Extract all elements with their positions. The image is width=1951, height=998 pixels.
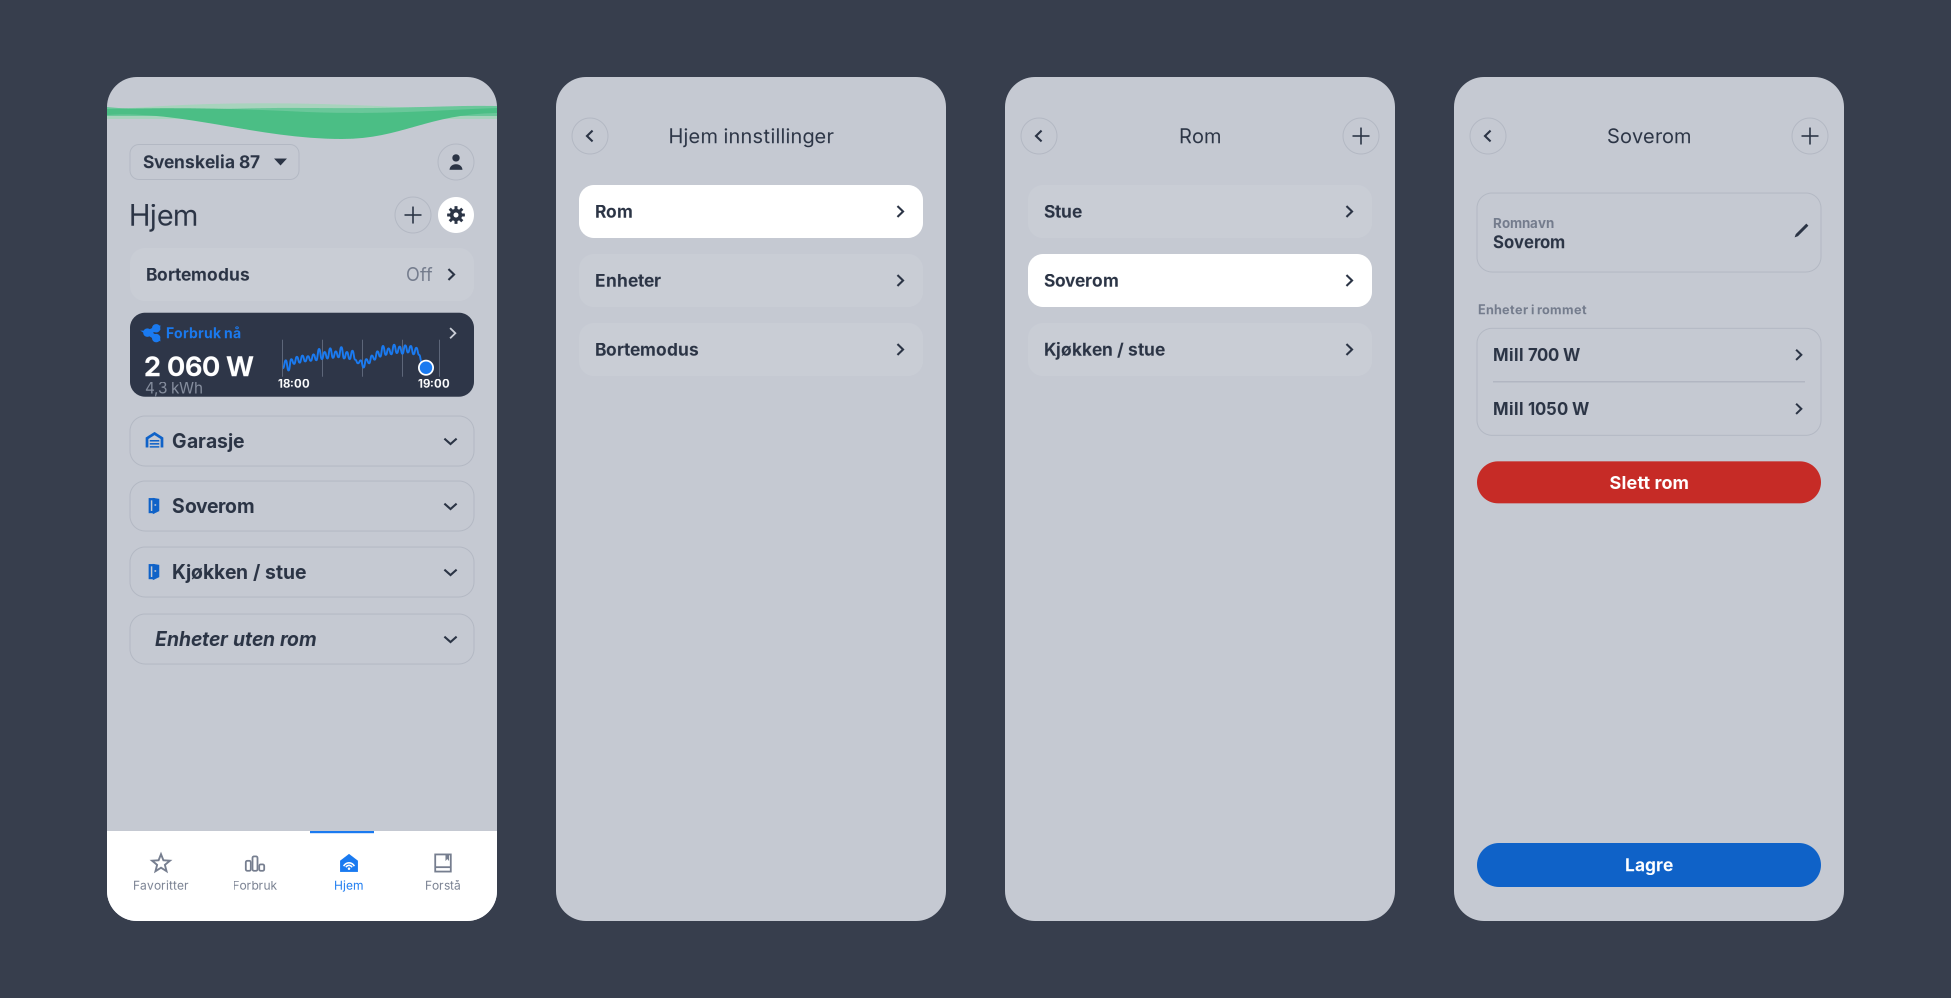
staticText: Mill 1050 W [1493, 399, 1589, 419]
button[interactable]: Bortemodus [579, 323, 923, 376]
staticText: Romnavn [1493, 215, 1554, 231]
button[interactable]: Settings [438, 197, 474, 233]
staticText: Bortemodus [595, 339, 699, 360]
button[interactable]: Forbruk nå [130, 313, 474, 397]
button[interactable]: Bortemodus [130, 248, 474, 301]
staticText: Favoritter [133, 878, 189, 892]
button[interactable]: Forbruk [208, 831, 302, 921]
staticText: Rom [1179, 124, 1221, 148]
button[interactable]: Enheter [579, 254, 923, 307]
button[interactable]: Mill 1050 W [1477, 382, 1821, 435]
button[interactable]: Enheter uten rom [130, 614, 474, 664]
staticText: 2 060 W [144, 350, 254, 383]
staticText: Bortemodus [146, 264, 250, 285]
staticText: Forstå [425, 878, 461, 892]
button[interactable]: Add [395, 197, 431, 233]
staticText: Forbruk nå [166, 325, 241, 342]
button[interactable]: Kjøkken / stue [130, 547, 474, 597]
staticText: 18:00 [278, 377, 310, 390]
button[interactable]: Add [1792, 118, 1828, 154]
staticText: Stue [1044, 201, 1082, 222]
button[interactable]: Slett rom [1477, 461, 1821, 503]
staticText: Enheter i rommet [1478, 302, 1587, 317]
staticText: Hjem [129, 197, 198, 233]
button[interactable]: Back [1021, 118, 1057, 154]
button[interactable]: Back [1470, 118, 1506, 154]
staticText: Rom [595, 201, 633, 222]
button[interactable]: Forstå [396, 831, 490, 921]
button[interactable]: Back [572, 118, 608, 154]
staticText: Soverom [1493, 232, 1565, 252]
staticText: Enheter [595, 270, 661, 291]
button[interactable]: Soverom [1028, 254, 1372, 307]
staticText: Off [406, 264, 433, 285]
staticText: Mill 700 W [1493, 345, 1580, 365]
button[interactable]: Hjem [302, 831, 396, 921]
button[interactable]: Mill 700 W [1477, 328, 1821, 381]
button[interactable]: Kjøkken / stue [1028, 323, 1372, 376]
staticText: Lagre [1625, 854, 1673, 875]
button[interactable]: Romnavn [1477, 193, 1821, 272]
staticText: Hjem [334, 878, 364, 892]
staticText: Soverom [1607, 124, 1691, 148]
staticText: Garasje [172, 429, 244, 453]
staticText: 19:00 [418, 377, 450, 390]
staticText: Forbruk [232, 878, 277, 892]
button[interactable]: Stue [1028, 185, 1372, 238]
staticText: Soverom [1044, 270, 1119, 291]
button[interactable]: Rom [579, 185, 923, 238]
button[interactable]: Garasje [130, 416, 474, 466]
button[interactable]: Add [1343, 118, 1379, 154]
button[interactable]: Favoritter [114, 831, 208, 921]
button[interactable]: Profile [438, 144, 474, 180]
staticText: Hjem innstillinger [668, 124, 833, 148]
button[interactable]: Svenskelia 87 [130, 144, 299, 179]
button[interactable]: Lagre [1477, 843, 1821, 887]
staticText: Kjøkken / stue [172, 560, 306, 584]
button[interactable]: Soverom [130, 481, 474, 531]
staticText: 4,3 kWh [145, 379, 203, 397]
staticText: Soverom [172, 494, 255, 518]
staticText: Enheter uten rom [155, 627, 317, 651]
staticText: Svenskelia 87 [143, 151, 260, 172]
staticText: Kjøkken / stue [1044, 339, 1165, 360]
staticText: Slett rom [1609, 471, 1688, 493]
